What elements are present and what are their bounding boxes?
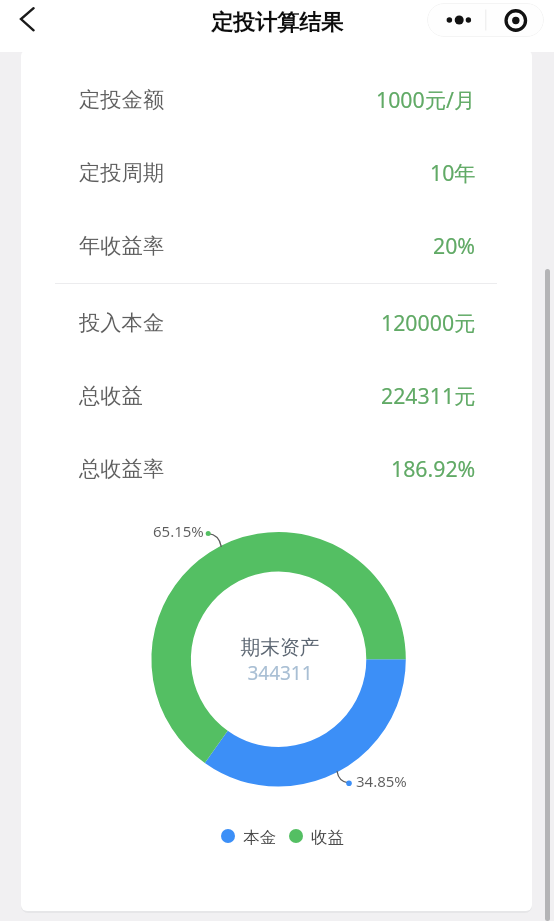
- button[interactable]: Close mini program: [486, 3, 544, 37]
- button[interactable]: 投入本金: [21, 286, 532, 359]
- staticText: 120000元: [381, 308, 476, 337]
- button[interactable]: 总收益率: [21, 432, 532, 505]
- staticText: 总收益率: [79, 455, 165, 482]
- button[interactable]: 年收益率: [21, 209, 532, 282]
- button[interactable]: 本金: [221, 827, 276, 845]
- staticText: 期末资产: [240, 635, 320, 660]
- staticText: 224311元: [381, 381, 476, 410]
- button[interactable]: 总收益: [21, 359, 532, 432]
- staticText: 定投金额: [79, 86, 165, 113]
- button[interactable]: More options: [427, 3, 486, 37]
- button[interactable]: Back: [8, 1, 46, 39]
- staticText: 186.92%: [391, 454, 476, 483]
- staticText: 投入本金: [79, 309, 165, 336]
- staticText: 20%: [433, 231, 476, 260]
- staticText: 总收益: [79, 382, 143, 409]
- staticText: 收益: [311, 827, 344, 845]
- button[interactable]: 定投金额: [21, 63, 532, 136]
- staticText: 本金: [243, 827, 276, 845]
- staticText: 344311: [247, 660, 313, 686]
- button[interactable]: 收益: [289, 827, 344, 845]
- staticText: 定投计算结果: [211, 9, 343, 37]
- button[interactable]: 定投周期: [21, 136, 532, 209]
- staticText: 定投周期: [79, 159, 165, 186]
- staticText: 34.85%: [356, 771, 407, 791]
- staticText: 65.15%: [153, 521, 204, 541]
- staticText: 年收益率: [79, 232, 165, 259]
- staticText: 10年: [430, 158, 476, 187]
- staticText: 1000元/月: [376, 85, 476, 114]
